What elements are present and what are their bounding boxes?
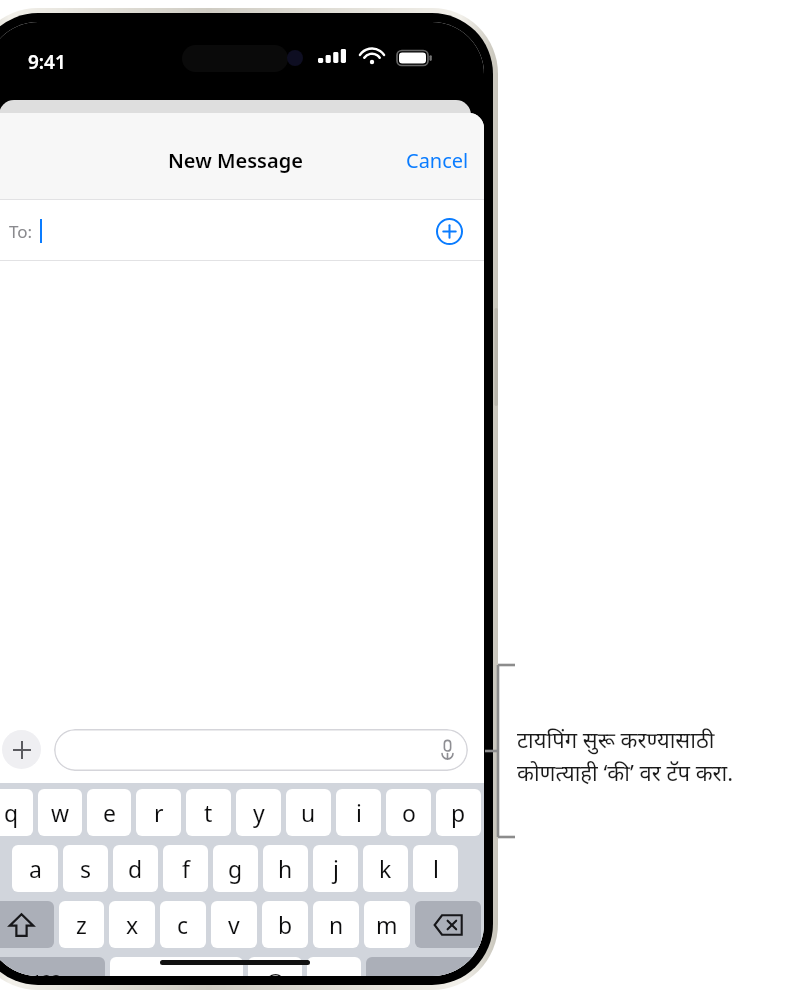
staticText: k xyxy=(379,853,392,884)
button[interactable]: @ xyxy=(248,957,302,976)
button[interactable]: 123 xyxy=(0,957,105,976)
staticText: s xyxy=(80,853,92,884)
button[interactable]: l xyxy=(413,845,458,892)
button[interactable]: h xyxy=(263,845,308,892)
button[interactable]: w xyxy=(38,789,82,836)
button[interactable]: b xyxy=(262,901,308,948)
button[interactable]: d xyxy=(113,845,158,892)
button[interactable]: x xyxy=(109,901,155,948)
staticText: x xyxy=(126,909,139,940)
button[interactable]: i xyxy=(336,789,381,836)
button[interactable]: a xyxy=(12,845,58,892)
staticText: q xyxy=(4,797,19,828)
staticText: b xyxy=(278,909,293,940)
staticText: To: xyxy=(9,220,33,243)
button[interactable]: g xyxy=(213,845,258,892)
button[interactable]: t xyxy=(186,789,231,836)
button[interactable]: y xyxy=(236,789,281,836)
button[interactable]: Add contact xyxy=(430,212,468,250)
staticText: l xyxy=(433,853,439,884)
staticText: i xyxy=(356,797,362,828)
staticText: t xyxy=(204,797,213,828)
staticText: n xyxy=(329,909,344,940)
staticText: j xyxy=(333,853,339,884)
staticText: return xyxy=(398,969,449,976)
staticText: u xyxy=(301,797,316,828)
button[interactable]: Delete xyxy=(415,901,481,948)
staticText: y xyxy=(253,797,265,828)
staticText: c xyxy=(177,909,189,940)
staticText: m xyxy=(376,909,398,940)
staticText: o xyxy=(402,797,416,828)
button[interactable]: m xyxy=(364,901,410,948)
button[interactable]: r xyxy=(136,789,181,836)
button[interactable]: v xyxy=(211,901,257,948)
staticText: z xyxy=(76,909,87,940)
button[interactable]: e xyxy=(87,789,131,836)
staticText: a xyxy=(29,853,42,884)
button[interactable]: Shift xyxy=(0,901,54,948)
button[interactable] xyxy=(54,729,468,771)
button[interactable]: Add attachment xyxy=(2,730,41,769)
staticText: 123 xyxy=(32,969,62,976)
staticText: e xyxy=(103,797,116,828)
button[interactable]: c xyxy=(160,901,206,948)
button[interactable]: q xyxy=(0,789,33,836)
staticText: @ xyxy=(265,966,285,976)
button[interactable]: space xyxy=(110,957,243,976)
button[interactable]: . xyxy=(307,957,361,976)
staticText: d xyxy=(128,853,143,884)
button[interactable]: j xyxy=(313,845,358,892)
staticText: r xyxy=(154,797,164,828)
staticText: p xyxy=(451,797,466,828)
staticText: g xyxy=(228,853,243,884)
staticText: h xyxy=(278,853,293,884)
staticText: f xyxy=(182,853,190,884)
button[interactable]: n xyxy=(313,901,359,948)
staticText: v xyxy=(228,909,240,940)
button[interactable]: k xyxy=(363,845,408,892)
staticText: 9:41 xyxy=(28,49,66,75)
button[interactable]: f xyxy=(163,845,208,892)
button[interactable]: Cancel xyxy=(391,138,484,183)
button[interactable]: u xyxy=(286,789,331,836)
button[interactable]: o xyxy=(386,789,431,836)
staticText: Cancel xyxy=(406,147,469,174)
staticText: w xyxy=(51,797,70,828)
button[interactable]: return xyxy=(366,957,481,976)
staticText: टायपिंग सुरू करण्यासाठी xyxy=(517,724,715,754)
button[interactable]: s xyxy=(63,845,108,892)
button[interactable]: p xyxy=(436,789,481,836)
button[interactable]: z xyxy=(59,901,104,948)
staticText: कोणत्याही ‘की’ वर टॅप करा. xyxy=(517,757,734,787)
staticText: New Message xyxy=(168,147,303,174)
